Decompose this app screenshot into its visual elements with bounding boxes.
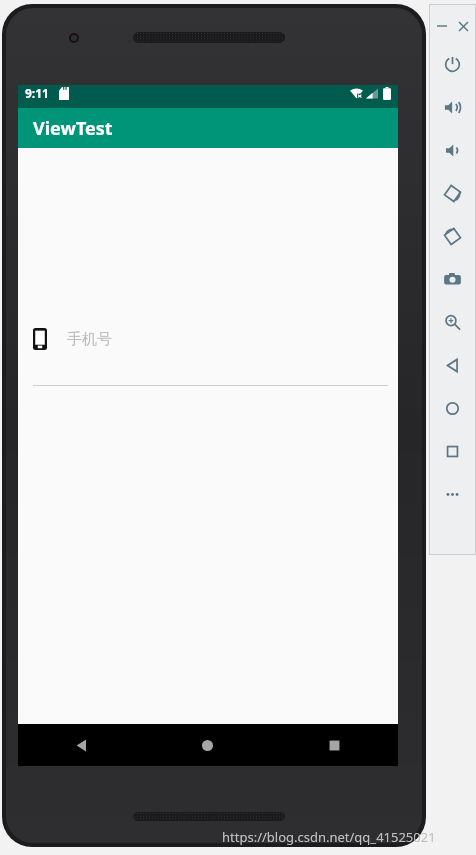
other: Phone number [33, 328, 47, 350]
button[interactable]: Zoom [439, 309, 466, 336]
button[interactable]: Volume up [439, 94, 466, 121]
button[interactable]: Home [439, 395, 466, 422]
staticText: 手机号 [67, 330, 112, 349]
button[interactable]: Overview [439, 438, 466, 465]
staticText: 9:11 [25, 85, 49, 101]
staticText: https://blog.csdn.net/qq_41525021 [222, 828, 436, 846]
button[interactable]: Screenshot [439, 266, 466, 293]
button[interactable]: Rotate right [439, 223, 466, 250]
button[interactable]: Home [144, 724, 271, 766]
button[interactable]: Recent apps [271, 724, 398, 766]
button[interactable]: Back [439, 352, 466, 379]
button[interactable]: Back [18, 724, 144, 766]
button[interactable]: Volume down [439, 137, 466, 164]
button[interactable]: Phone number [33, 328, 388, 350]
button[interactable]: Close [455, 18, 471, 34]
staticText: ViewTest [33, 116, 113, 141]
button[interactable]: Minimize [434, 18, 450, 34]
button[interactable]: Rotate left [439, 180, 466, 207]
button[interactable]: Power [439, 51, 466, 78]
button[interactable]: More [439, 481, 466, 508]
